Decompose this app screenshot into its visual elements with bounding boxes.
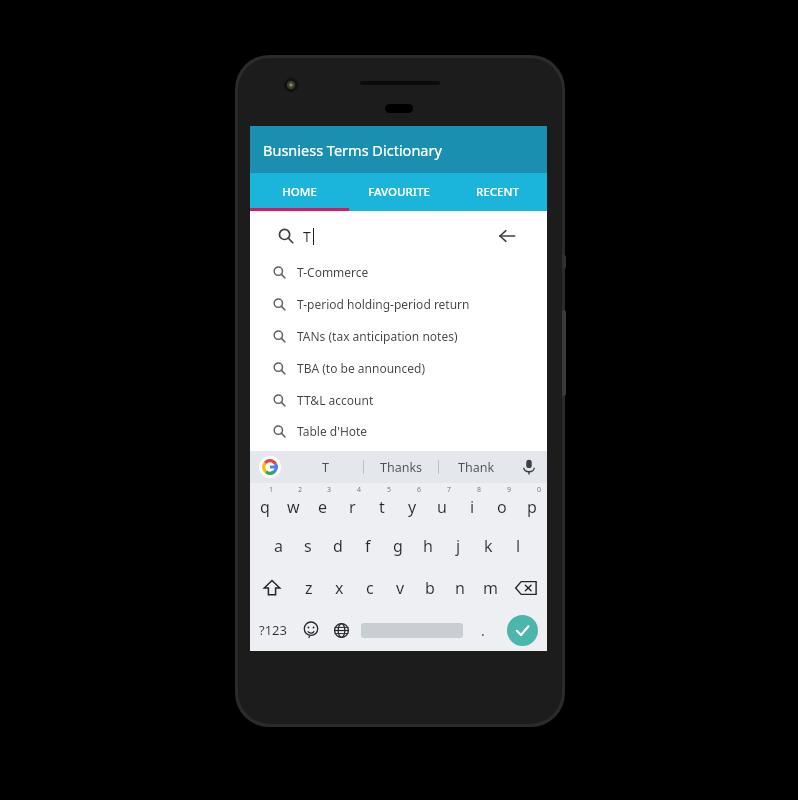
staticText: 5 [387,485,392,495]
button[interactable]: s [293,525,323,567]
button[interactable]: Change language [326,609,357,651]
button[interactable]: TANs (tax anticipation notes) [262,320,533,352]
staticText: FAVOURITE [368,184,430,200]
button[interactable]: 2 [279,483,308,525]
staticText: 7 [447,485,452,495]
button[interactable]: ?123 [250,609,295,651]
button[interactable]: 0 [517,483,547,525]
button[interactable]: 6 [397,483,427,525]
staticText: RECENT [476,184,519,200]
staticText: a [274,535,283,557]
button[interactable]: l [503,525,533,567]
staticText: Table d'Hote [297,423,368,439]
button[interactable]: Search [266,216,528,256]
staticText: i [470,496,475,518]
button[interactable]: TT&L account [262,384,533,416]
button[interactable]: RECENT [448,173,547,211]
staticText: Thank [458,459,495,476]
button[interactable]: 9 [487,483,517,525]
button[interactable]: Voice input [521,459,537,475]
button[interactable]: TBA (to be announced) [262,352,533,384]
button[interactable]: T-Commerce [262,256,533,288]
staticText: x [335,577,344,599]
staticText: TT&L account [297,392,374,408]
staticText: 2 [298,485,303,495]
staticText: HOME [282,184,317,200]
button[interactable] [357,609,467,651]
staticText: p [527,496,537,518]
button[interactable]: Thank [439,451,513,483]
button[interactable]: m [475,567,505,609]
staticText: v [396,577,405,599]
button[interactable]: Shift [250,567,293,609]
staticText: g [393,535,403,557]
button[interactable]: Thanks [364,451,438,483]
staticText: 8 [477,485,482,495]
button[interactable]: Google [259,456,281,478]
staticText: 4 [357,485,362,495]
button[interactable]: T-period holding-period return [262,288,533,320]
staticText: l [516,535,521,557]
button[interactable]: d [323,525,353,567]
button[interactable]: x [324,567,355,609]
button[interactable]: c [355,567,385,609]
button[interactable]: g [383,525,413,567]
staticText: T [322,459,329,476]
staticText: k [484,535,493,557]
button[interactable]: T [288,451,363,483]
staticText: j [456,535,461,557]
staticText: r [349,496,356,518]
button[interactable]: 4 [337,483,367,525]
staticText: 3 [327,485,332,495]
button[interactable]: j [443,525,473,567]
button[interactable]: Backspace [505,567,547,609]
button[interactable]: a [264,525,293,567]
button[interactable]: h [413,525,443,567]
staticText: T-Commerce [297,264,369,280]
button[interactable]: 5 [367,483,397,525]
staticText: TANs (tax anticipation notes) [297,328,458,344]
staticText: o [497,496,507,518]
staticText: c [366,577,374,599]
staticText: 6 [417,485,422,495]
button[interactable]: . [467,609,498,651]
staticText: y [408,496,417,518]
staticText: T-period holding-period return [297,296,470,312]
staticText: w [287,496,300,518]
staticText: n [455,577,465,599]
staticText: TBA (to be announced) [297,360,426,376]
staticText: m [483,577,498,599]
button[interactable]: v [385,567,415,609]
button[interactable]: 3 [308,483,337,525]
staticText: t [379,496,385,518]
staticText: Busniess Terms Dictionary [263,140,442,160]
button[interactable]: 8 [457,483,487,525]
staticText: b [425,577,435,599]
staticText: q [260,496,270,518]
button[interactable]: k [473,525,503,567]
other: Search [278,228,294,244]
button[interactable]: z [293,567,324,609]
staticText: T [303,227,311,246]
button[interactable]: Emoji [295,609,326,651]
staticText: 0 [537,485,542,495]
staticText: e [318,496,328,518]
staticText: f [365,535,371,557]
staticText: 1 [269,485,274,495]
button[interactable]: FAVOURITE [349,173,448,211]
button[interactable]: Back [496,225,518,247]
button[interactable]: 1 [250,483,279,525]
staticText: u [437,496,447,518]
button[interactable]: 7 [427,483,457,525]
staticText: Thanks [380,459,423,476]
staticText: z [305,577,313,599]
button[interactable]: Enter [498,609,547,651]
staticText: . [481,621,485,640]
button[interactable]: n [445,567,475,609]
button[interactable]: f [353,525,383,567]
button[interactable]: HOME [250,173,349,211]
button[interactable]: b [415,567,445,609]
staticText: s [304,535,312,557]
button[interactable]: Table d'Hote [262,416,533,446]
staticText: ?123 [259,621,287,639]
